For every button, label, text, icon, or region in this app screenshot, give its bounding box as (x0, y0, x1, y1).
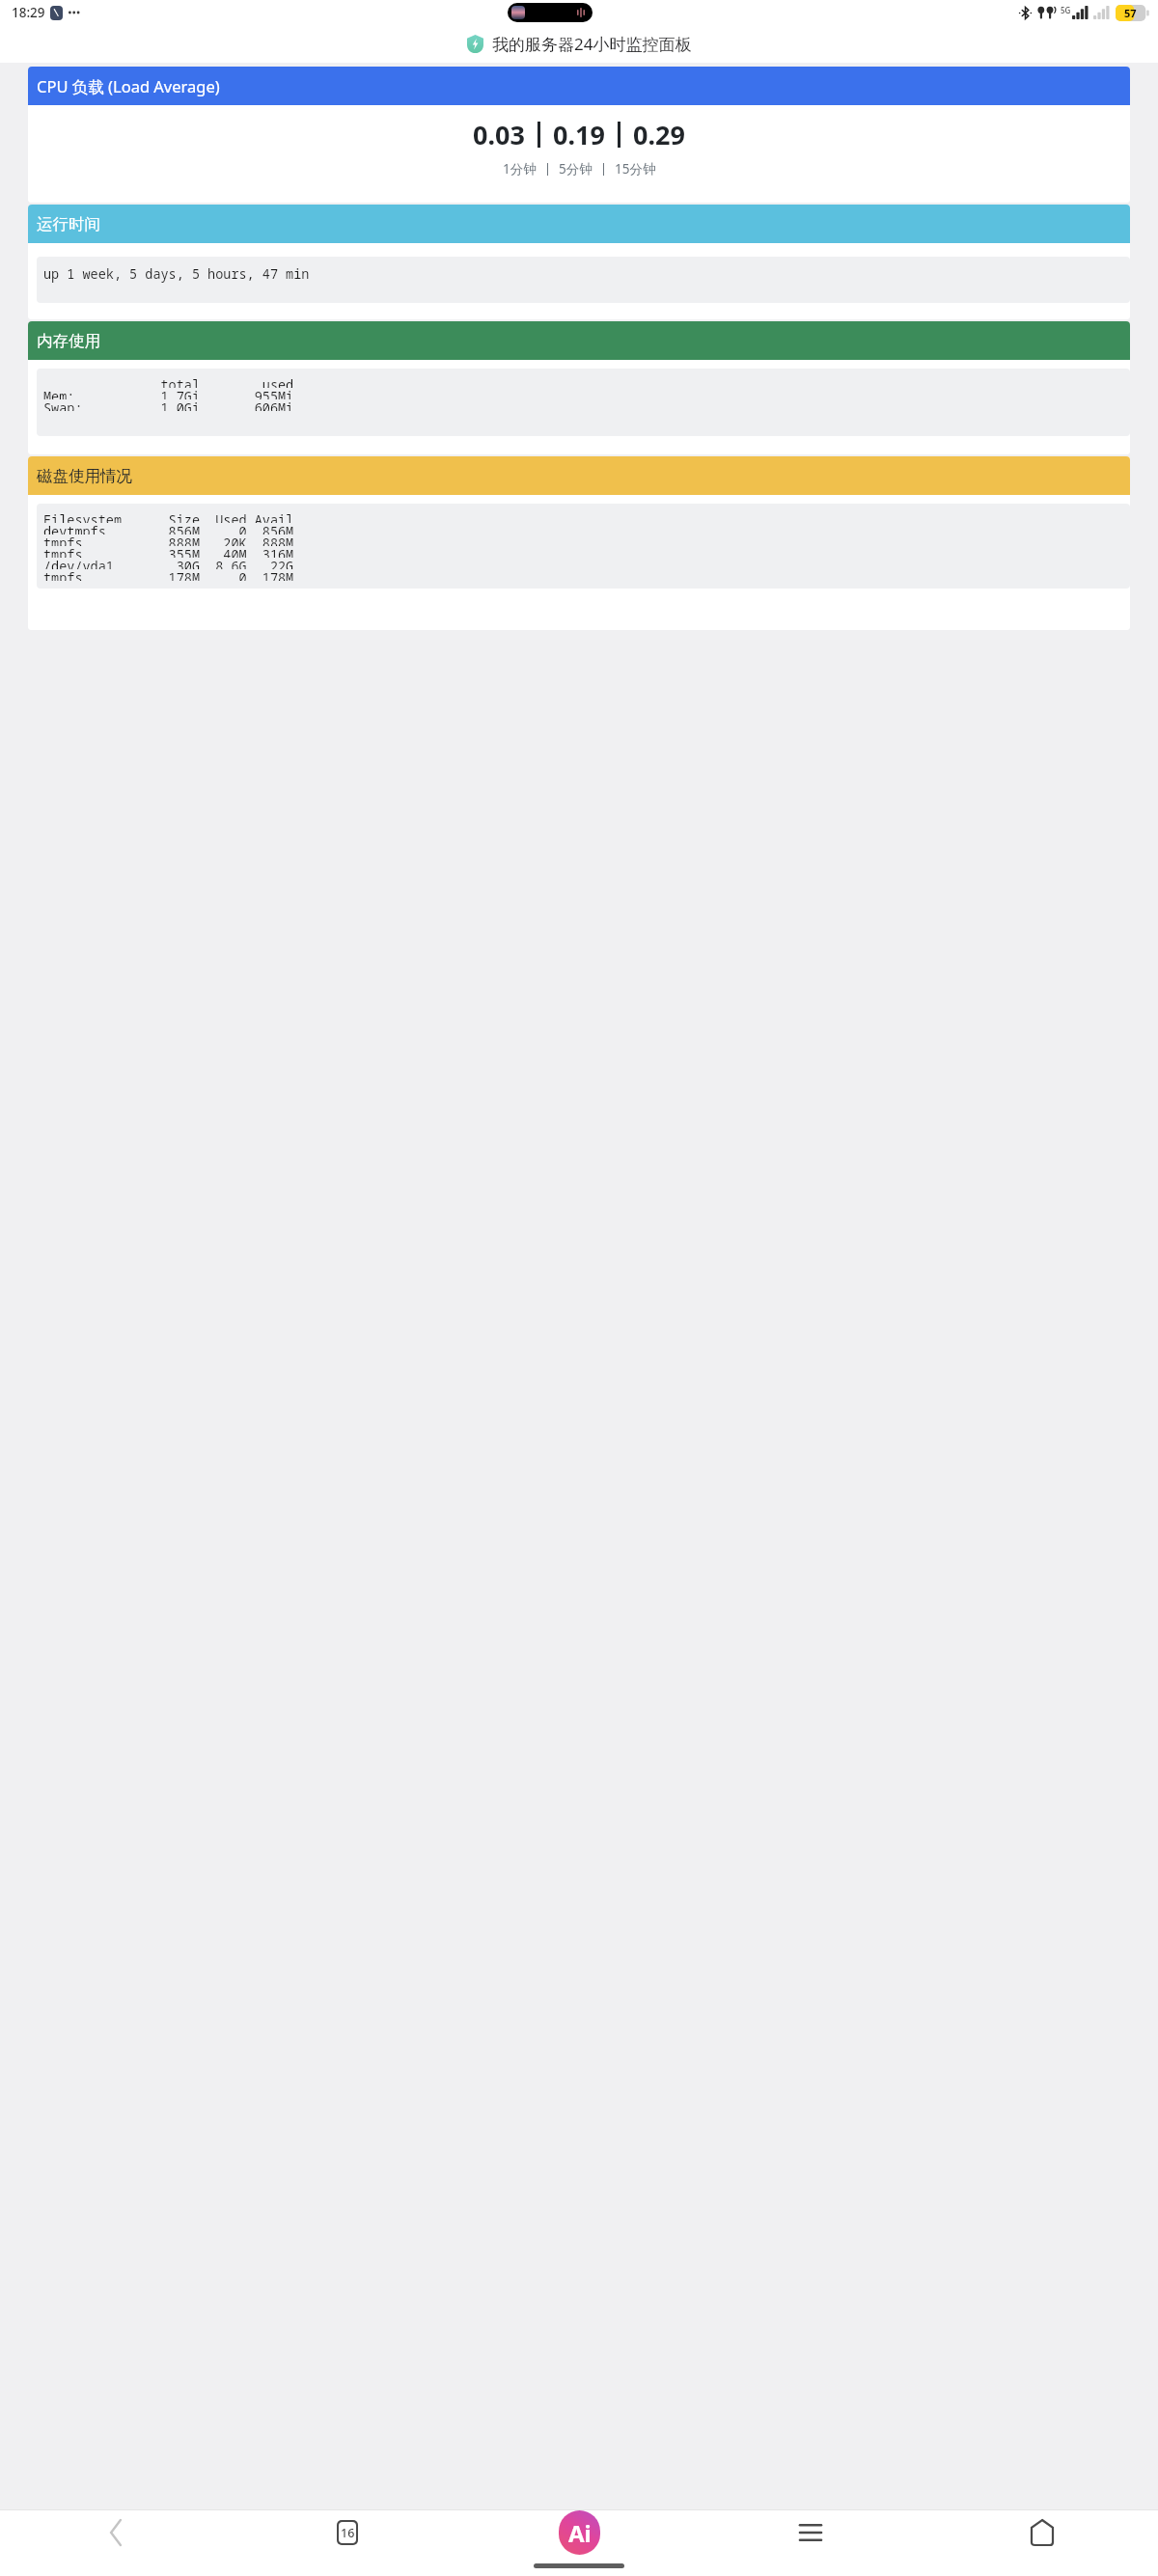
staticText: Swap: 1.0Gi 606Mi (43, 399, 294, 411)
button[interactable]: Menu (695, 2510, 926, 2555)
button[interactable]: Ai assistant (463, 2510, 695, 2555)
staticText: 1分钟 (503, 160, 537, 178)
staticText: Ai (568, 2517, 592, 2549)
staticText: tmpfs 178M 0 178M (43, 569, 294, 581)
button[interactable]: Tabs: 16 (232, 2510, 463, 2555)
staticText: 0.03 (473, 117, 525, 152)
staticText: 0.19 (553, 117, 605, 152)
staticText: 5分钟 (559, 160, 593, 178)
staticText: tmpfs 355M 40M 316M (43, 546, 294, 558)
staticText: CPU 负载 (Load Average) (37, 75, 220, 97)
staticText: Filesystem Size Used Avail (43, 511, 294, 523)
staticText: up 1 week, 5 days, 5 hours, 47 min (43, 265, 310, 283)
button[interactable]: 内存使用 (28, 321, 1130, 454)
staticText: 15分钟 (615, 160, 656, 178)
button[interactable]: CPU 负载 (Load Average) (28, 67, 1130, 203)
button[interactable]: Back (0, 2510, 232, 2555)
staticText: total used (43, 376, 294, 388)
staticText: 18:29 (12, 4, 45, 21)
staticText: 5G (1061, 5, 1071, 15)
button[interactable]: 磁盘使用情况 (28, 456, 1130, 630)
staticText: 运行时间 (37, 214, 100, 234)
staticText: tmpfs 888M 20K 888M (43, 534, 294, 546)
staticText: devtmpfs 856M 0 856M (43, 523, 294, 534)
staticText: 磁盘使用情况 (37, 466, 132, 486)
staticText: Mem: 1.7Gi 955Mi (43, 388, 294, 399)
staticText: 16 (341, 2525, 355, 2541)
staticText: /dev/vda1 30G 8.6G 22G (43, 558, 294, 569)
staticText: 57 (1124, 6, 1137, 20)
staticText: 内存使用 (37, 331, 100, 351)
staticText: 我的服务器24小时监控面板 (492, 33, 692, 55)
button[interactable]: Home (926, 2510, 1158, 2555)
staticText: 0.29 (633, 117, 685, 152)
button[interactable]: 运行时间 (28, 205, 1130, 319)
